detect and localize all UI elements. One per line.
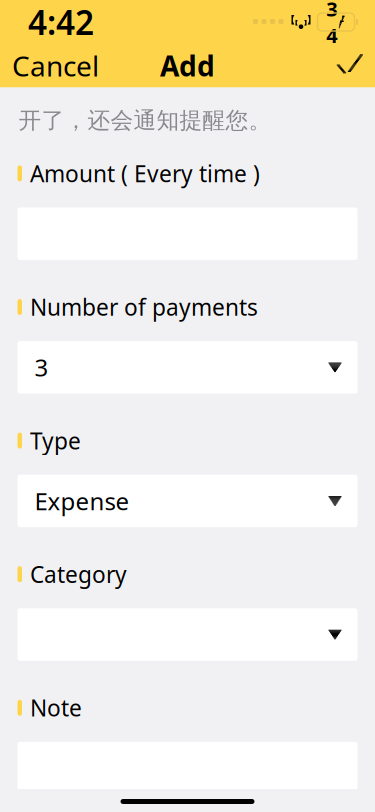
staticText: Cancel — [12, 47, 99, 84]
staticText: 开了，还会通知提醒您。 — [18, 106, 271, 134]
staticText: Expense — [34, 485, 129, 517]
button[interactable]: Save — [324, 44, 375, 87]
staticText: Category — [30, 559, 127, 589]
button[interactable]: Cancel — [0, 44, 111, 87]
staticText: Number of payments — [30, 292, 258, 322]
staticText: Type — [30, 425, 81, 456]
staticText: Note — [30, 693, 82, 723]
staticText: 3 — [34, 351, 48, 383]
staticText: 4:42 — [28, 0, 94, 44]
button[interactable] — [17, 608, 357, 661]
staticText: Amount ( Every time ) — [30, 158, 260, 188]
button[interactable]: 3 — [17, 341, 357, 393]
button[interactable]: Expense — [17, 475, 357, 527]
button[interactable] — [17, 742, 357, 794]
staticText: Add — [160, 47, 215, 84]
staticText: 34 — [326, 0, 337, 48]
